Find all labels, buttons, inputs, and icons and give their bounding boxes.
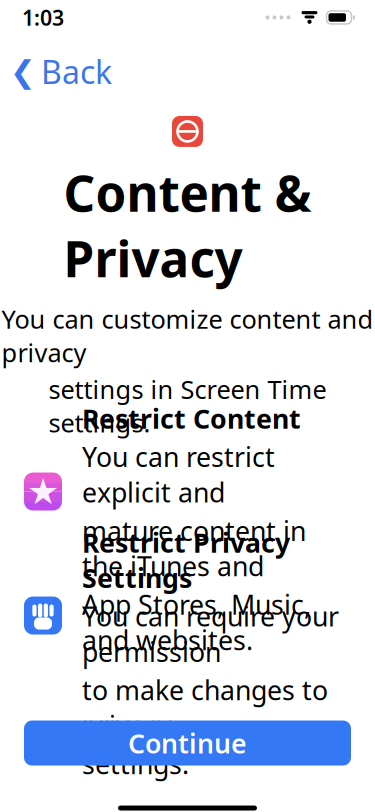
staticText: settings. bbox=[82, 746, 189, 781]
staticText: You can require your permission bbox=[82, 598, 339, 669]
staticText: Content & Privacy bbox=[63, 160, 311, 291]
staticText: Restrict Content bbox=[82, 401, 301, 436]
staticText: ★ bbox=[27, 471, 59, 512]
staticText: Continue bbox=[128, 725, 247, 761]
staticText: Restrict Privacy Settings bbox=[82, 525, 290, 595]
staticText: 1:03 bbox=[22, 3, 64, 32]
staticText: App Stores, Music, and websites. bbox=[82, 587, 311, 657]
staticText: You can restrict explicit and bbox=[82, 439, 275, 510]
staticText: settings in Screen Time settings. bbox=[48, 372, 326, 440]
staticText: mature content in the iTunes and bbox=[82, 513, 306, 584]
staticText: ❮ bbox=[10, 54, 36, 89]
button[interactable]: ❮ bbox=[4, 43, 122, 100]
button[interactable]: Continue bbox=[24, 720, 351, 765]
staticText: You can customize content and privacy bbox=[1, 302, 373, 369]
staticText: to make changes to privacy bbox=[82, 672, 328, 743]
staticText: Back bbox=[41, 50, 112, 93]
